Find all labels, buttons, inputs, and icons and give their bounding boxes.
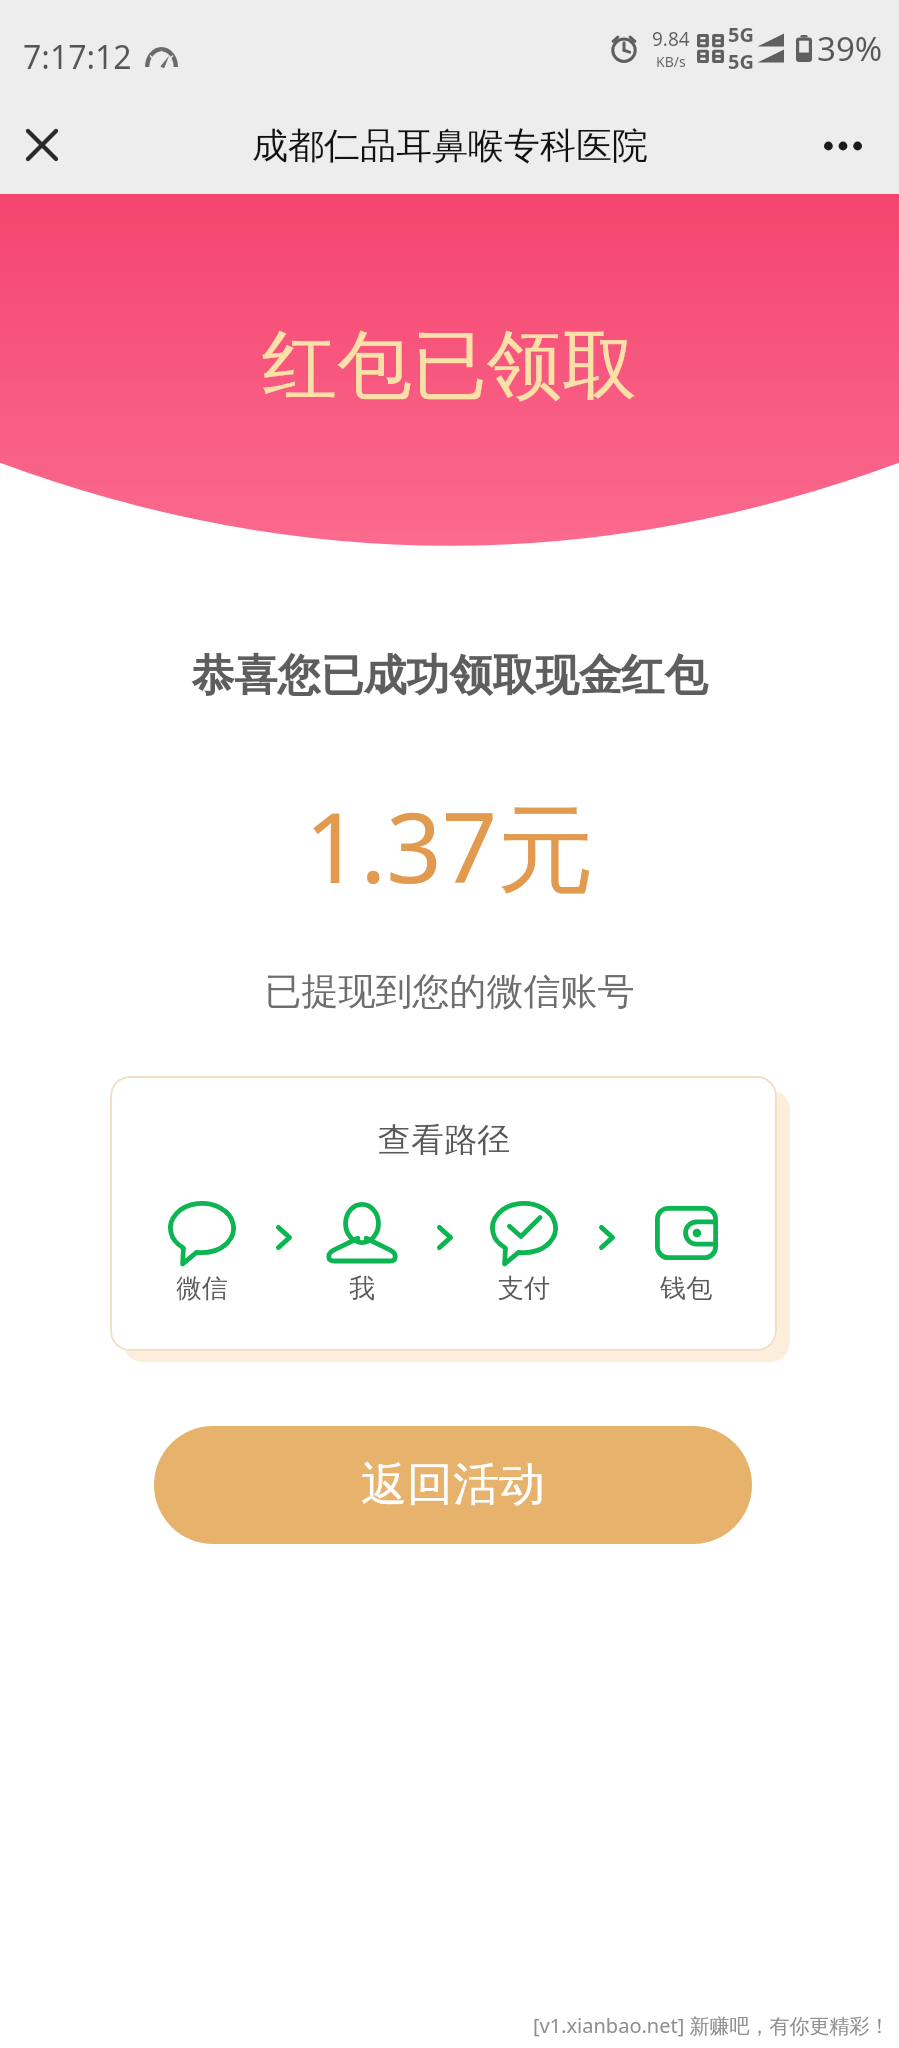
staticText: KB/s xyxy=(656,52,686,71)
staticText: 7:17:12 xyxy=(23,35,132,79)
staticText: 我 xyxy=(349,1272,375,1305)
staticText: 返回活动 xyxy=(361,1456,545,1514)
staticText: [v1.xianbao.net] 新赚吧，有你更精彩！ xyxy=(533,2012,890,2039)
staticText: 5G xyxy=(728,21,754,48)
staticText: 5G xyxy=(728,48,754,75)
staticText: 支付 xyxy=(498,1272,550,1305)
staticText: 微信 xyxy=(176,1272,228,1305)
staticText: 成都仁品耳鼻喉专科医院 xyxy=(252,123,648,168)
staticText: 恭喜您已成功领取现金红包 xyxy=(0,649,899,703)
button[interactable]: 返回活动 xyxy=(154,1426,752,1544)
staticText: 已提现到您的微信账号 xyxy=(0,968,899,1015)
staticText: 查看路径 xyxy=(378,1119,510,1161)
button[interactable]: Close xyxy=(0,93,94,197)
staticText: 1.37元 xyxy=(0,779,899,911)
staticText: 红包已领取 xyxy=(262,319,637,413)
staticText: 39% xyxy=(817,26,883,71)
staticText: 钱包 xyxy=(660,1272,712,1305)
staticText: 9.84 xyxy=(652,26,690,52)
button[interactable]: More options xyxy=(791,94,895,198)
